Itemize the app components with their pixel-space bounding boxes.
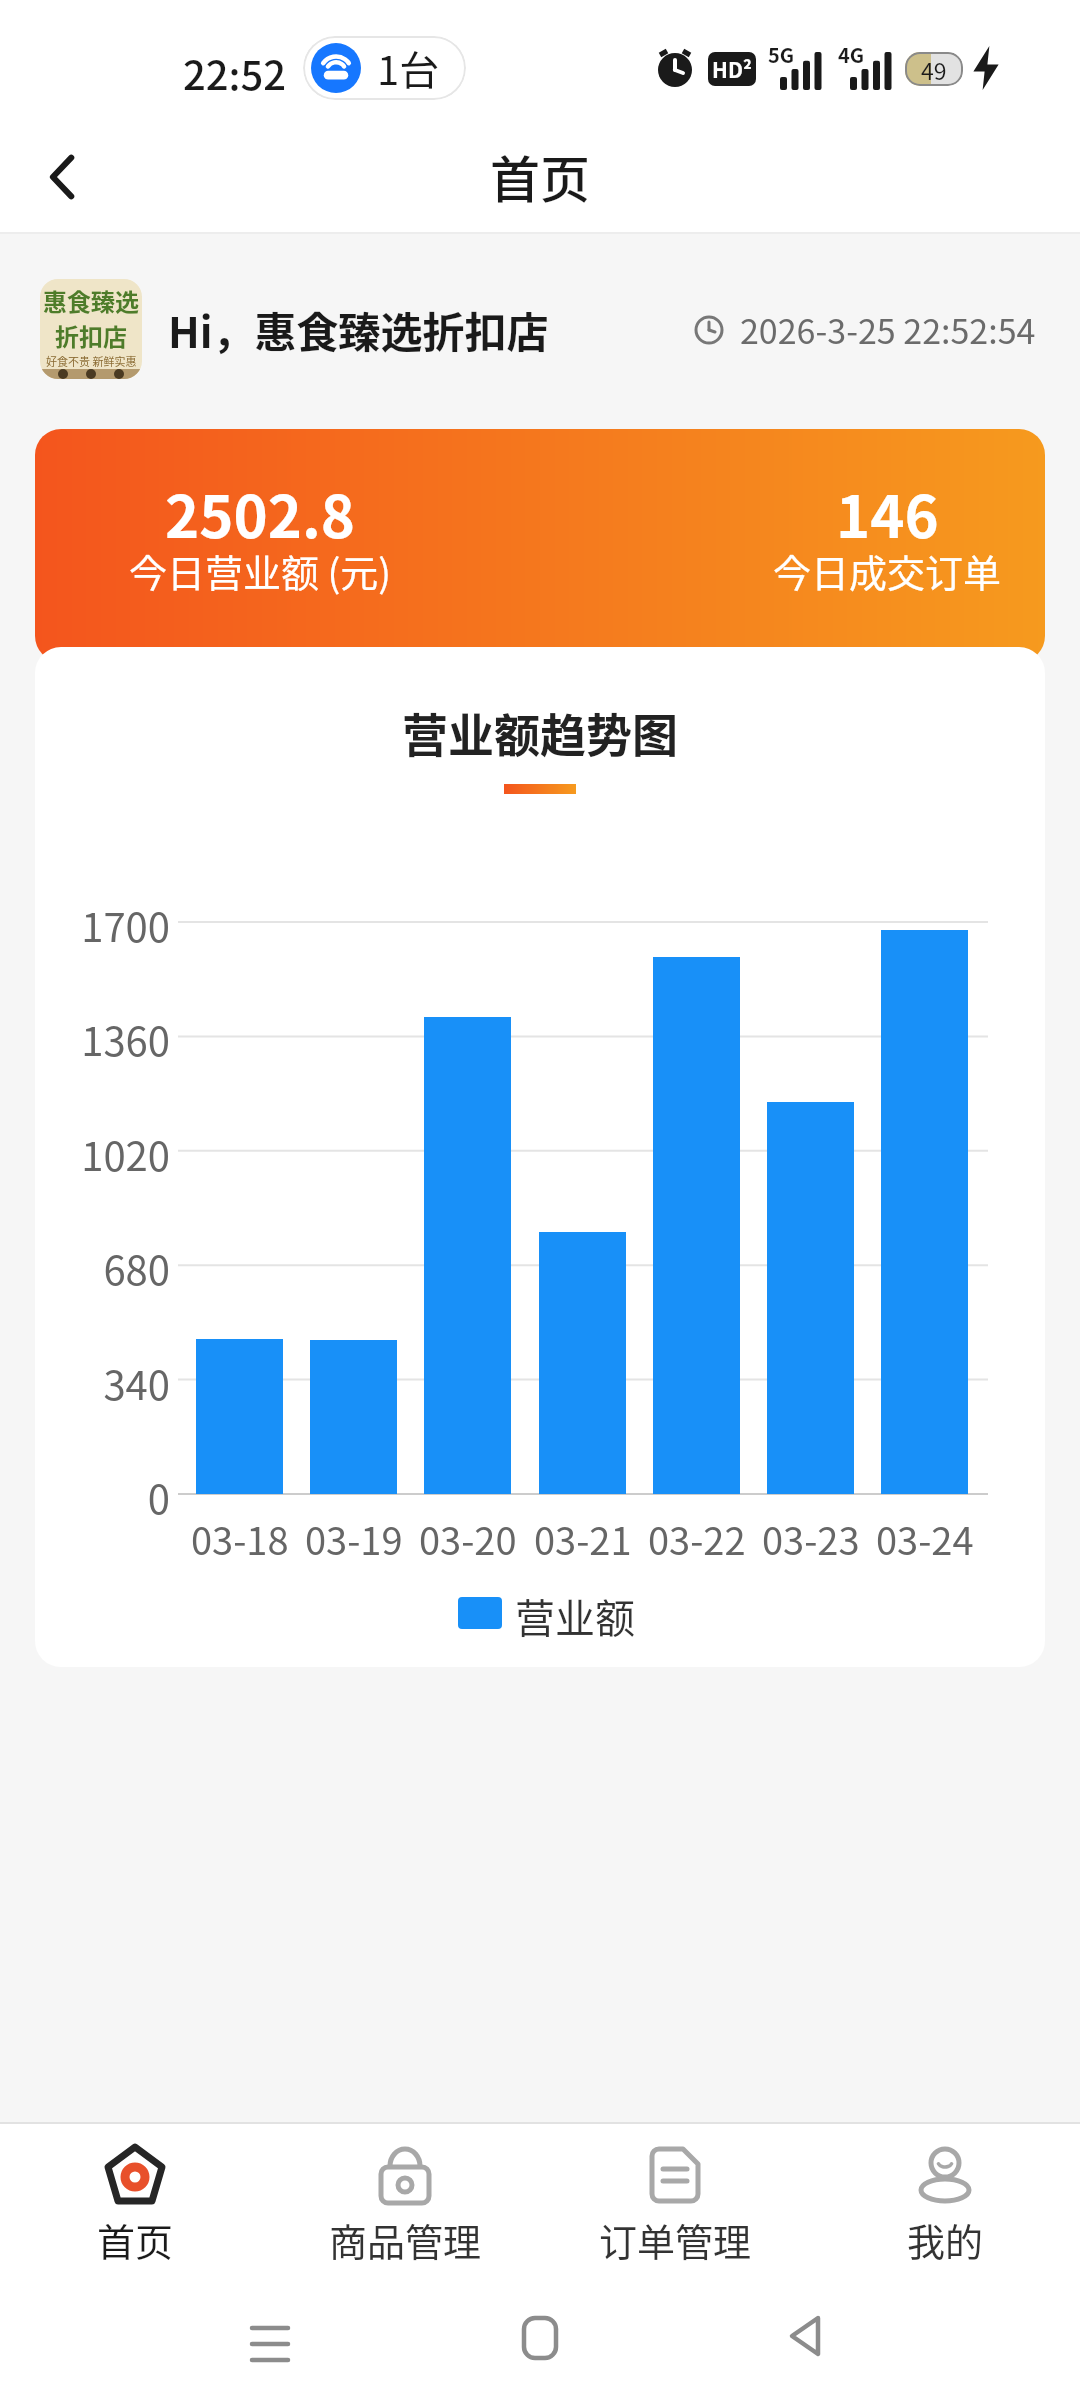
staticText: 340 [103, 1354, 170, 1412]
staticText: 03-24 [876, 1511, 974, 1566]
button[interactable]: 我的 [810, 2124, 1080, 2284]
button[interactable]: 2502.8 [35, 429, 1045, 662]
staticText: 146 [836, 471, 939, 555]
button[interactable] [40, 154, 86, 200]
staticText: 03-22 [648, 1511, 746, 1566]
staticText: 03-20 [419, 1511, 517, 1566]
button[interactable]: 订单管理 [540, 2124, 810, 2284]
staticText: 680 [103, 1239, 170, 1297]
staticText: 2026-3-25 22:52:54 [740, 305, 1036, 354]
staticText: 5G [768, 40, 795, 69]
staticText: 折扣店 [55, 318, 127, 353]
staticText: 49 [921, 53, 947, 86]
staticText: 惠食臻选 [43, 283, 139, 318]
staticText: Hi，惠食臻选折扣店 [168, 299, 549, 360]
staticText: 03-23 [762, 1511, 860, 1566]
staticText: 03-19 [305, 1511, 403, 1566]
staticText: 营业额 [515, 1587, 635, 1645]
staticText: 0 [147, 1468, 170, 1526]
staticText: HD² [712, 54, 752, 84]
staticText: 1360 [81, 1010, 170, 1068]
staticText: 订单管理 [599, 2212, 752, 2267]
staticText: 首页 [490, 140, 590, 212]
staticText: 好食不贵 新鲜实惠 [46, 353, 137, 369]
staticText: 商品管理 [329, 2212, 482, 2267]
staticText: 今日营业额 (元) [129, 543, 392, 598]
staticText: 今日成交订单 [773, 543, 1002, 598]
staticText: 1台 [377, 39, 440, 97]
staticText: 营业额趋势图 [402, 699, 678, 766]
button[interactable]: 首页 [0, 2124, 270, 2284]
staticText: 22:52 [183, 44, 287, 102]
staticText: 1020 [81, 1125, 170, 1183]
staticText: 4G [838, 40, 865, 69]
staticText: 首页 [97, 2212, 174, 2267]
staticText: 03-18 [191, 1511, 289, 1566]
staticText: 我的 [907, 2212, 984, 2267]
staticText: 03-21 [534, 1511, 632, 1566]
button[interactable]: 商品管理 [270, 2124, 540, 2284]
staticText: 1700 [81, 896, 170, 954]
staticText: 2502.8 [165, 471, 355, 555]
